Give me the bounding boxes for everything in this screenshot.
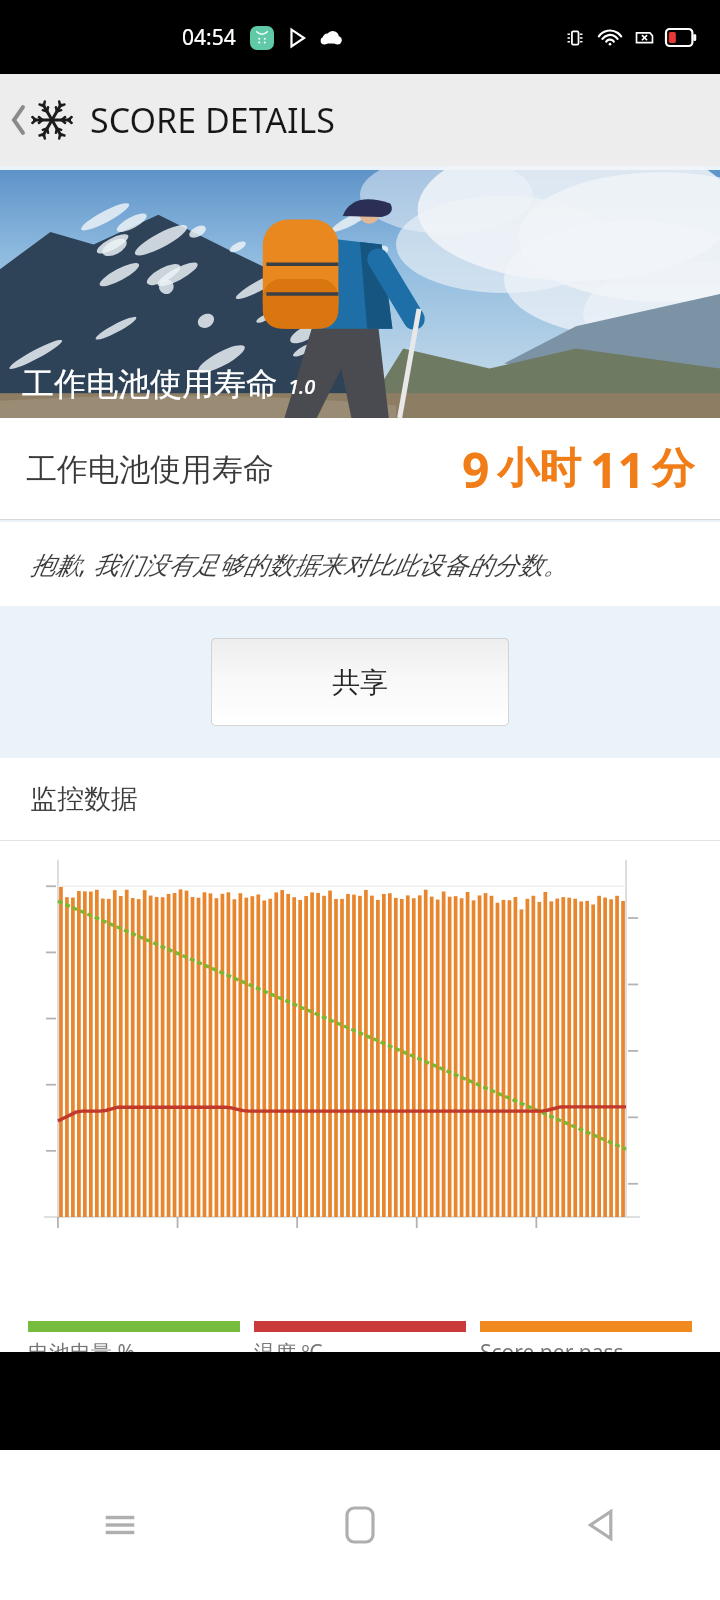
staticText: 共享 — [332, 665, 388, 700]
staticText: 温度 ºC — [254, 1338, 323, 1352]
staticText: 9 — [462, 437, 490, 502]
staticText: 小时 — [497, 443, 581, 496]
staticText: SCORE DETAILS — [90, 97, 335, 143]
staticText: 1.0 — [288, 373, 316, 400]
staticText: Score per pass — [480, 1338, 624, 1352]
button[interactable]: Back — [480, 1450, 720, 1600]
button[interactable]: Home — [240, 1450, 480, 1600]
staticText: 电池电量 % — [28, 1338, 135, 1352]
staticText: 抱歉, 我们没有足够的数据来对比此设备的分数。 — [30, 547, 568, 581]
button[interactable]: 抱歉, 我们没有足够的数据来对比此设备的分数。 — [0, 522, 720, 606]
staticText: 11 — [590, 437, 645, 502]
staticText: 工作电池使用寿命 — [26, 450, 274, 489]
staticText: 04:54 — [182, 23, 236, 52]
staticText: 监控数据 — [30, 782, 138, 816]
button[interactable]: Back — [0, 92, 78, 148]
staticText: 分 — [652, 443, 694, 496]
button[interactable]: 共享 — [211, 638, 509, 726]
staticText: 工作电池使用寿命 — [22, 364, 278, 404]
button[interactable]: 工作电池使用寿命 — [0, 418, 720, 520]
button[interactable]: Work battery life benchmark — [0, 170, 720, 418]
button[interactable]: Recents — [0, 1450, 240, 1600]
